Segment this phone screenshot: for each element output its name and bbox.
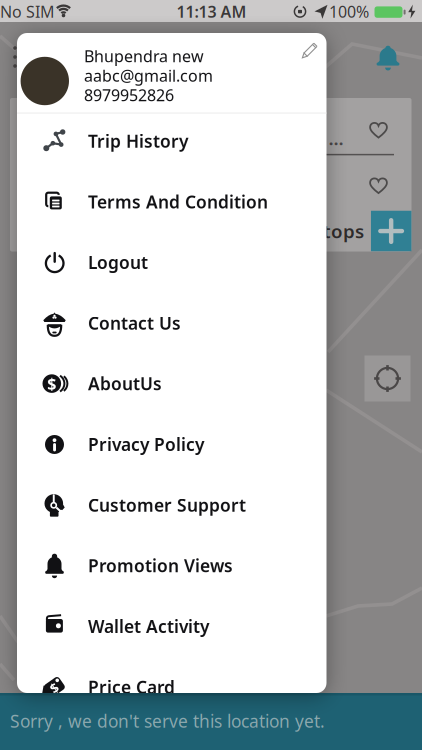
button[interactable]: Terms And Condition (17, 171, 326, 232)
button[interactable]: Wallet Activity (17, 596, 326, 656)
button[interactable]: My Location (364, 355, 410, 401)
staticText: Bhupendra new (84, 45, 204, 67)
staticText: Promotion Views (88, 554, 233, 577)
button[interactable]: Promotion Views (17, 535, 326, 596)
staticText: No SIM (0, 1, 55, 22)
button[interactable]: $ (17, 657, 326, 717)
staticText: 11:13 AM (176, 1, 246, 22)
staticText: Wallet Activity (88, 615, 209, 638)
staticText: stops (314, 219, 364, 243)
staticText: 8979952826 (84, 84, 174, 106)
staticText: Logout (88, 251, 148, 274)
button[interactable]: Privacy Policy (17, 414, 326, 475)
staticText: Trip History (88, 129, 188, 152)
staticText: Customer Support (88, 493, 246, 516)
staticText: ... (328, 126, 343, 150)
button[interactable]: Add stop (371, 211, 411, 251)
button[interactable]: Favorite destination (368, 176, 388, 195)
staticText: $ (47, 373, 56, 394)
button[interactable]: Logout (17, 232, 326, 293)
staticText: Sorry , we don't serve this location yet… (10, 709, 325, 732)
button[interactable]: $ (17, 353, 326, 414)
button[interactable]: Notifications (371, 40, 405, 74)
button[interactable]: Customer Support (17, 475, 326, 535)
staticText: 100% (329, 1, 369, 22)
button[interactable]: Edit Profile (299, 36, 323, 60)
staticText: $ (50, 678, 58, 696)
button[interactable]: Contact Us (17, 293, 326, 353)
staticText: Privacy Policy (88, 433, 204, 456)
staticText: AboutUs (88, 372, 162, 395)
staticText: Contact Us (88, 311, 181, 334)
staticText: Terms And Condition (88, 190, 268, 213)
staticText: Price Card (88, 675, 175, 698)
button[interactable]: Trip History (17, 111, 326, 171)
button[interactable]: Favorite pickup (368, 121, 388, 140)
staticText: aabc@gmail.com (84, 65, 213, 86)
